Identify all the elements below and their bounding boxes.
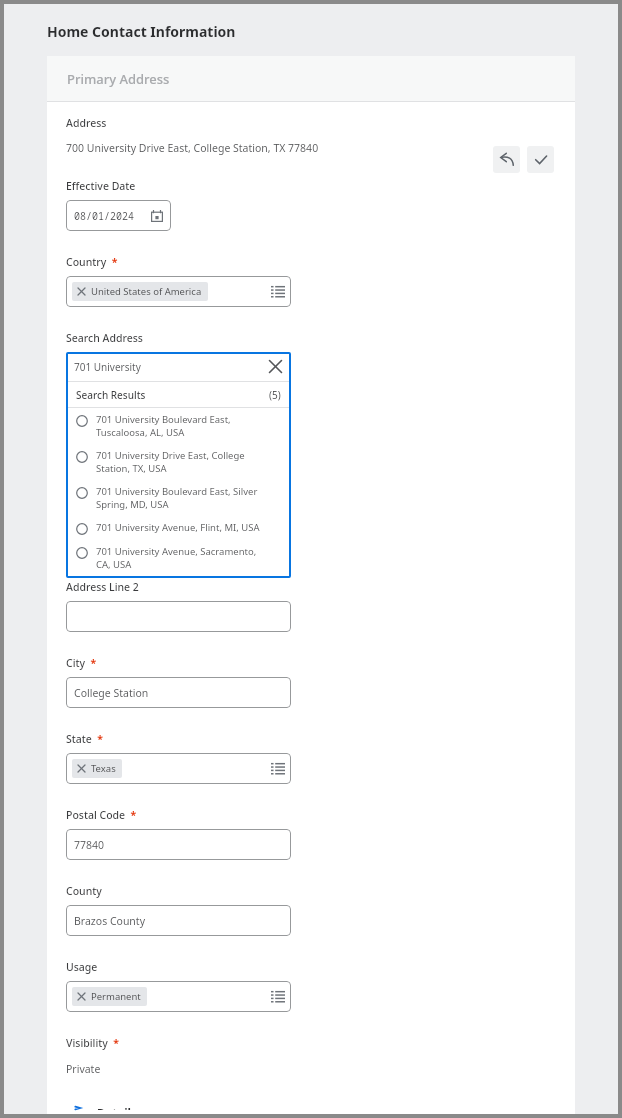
staticText: (5) <box>269 388 281 402</box>
staticText: Permanent <box>91 990 141 1003</box>
button[interactable] <box>66 601 291 632</box>
other: Calendar <box>151 210 163 222</box>
staticText: Address Line 2 <box>66 580 139 594</box>
staticText: 08/01/2024 <box>74 209 134 223</box>
button[interactable]: College Station <box>66 677 291 708</box>
staticText: College Station <box>74 686 149 700</box>
button[interactable]: Brazos County <box>66 905 291 936</box>
staticText: Effective Date <box>66 179 136 193</box>
staticText: 701 University <box>74 360 141 374</box>
button[interactable]: 701 University Drive East, College <box>66 444 291 480</box>
button[interactable]: 77840 <box>66 829 291 860</box>
staticText: Address <box>66 116 107 130</box>
button[interactable]: Confirm <box>527 146 554 173</box>
button[interactable]: 701 University Avenue, Sacramento, <box>66 540 291 576</box>
staticText: CA, USA <box>96 558 132 571</box>
staticText: 701 University Boulevard East, <box>96 413 231 426</box>
staticText: 701 University Boulevard East, Silver <box>96 485 258 498</box>
button[interactable]: Details <box>47 1106 575 1114</box>
staticText: Details <box>97 1106 137 1110</box>
staticText: 701 University Drive East, College <box>96 449 245 462</box>
staticText: City * <box>66 656 97 670</box>
button[interactable]: 701 University Boulevard East, <box>66 408 291 444</box>
staticText: 701 University Avenue, Flint, MI, USA <box>96 521 260 534</box>
button[interactable]: 701 University Avenue, Flint, MI, USA <box>66 516 291 540</box>
staticText: Station, TX, USA <box>96 462 167 475</box>
button[interactable]: Permanent <box>66 981 291 1012</box>
staticText: Tuscaloosa, AL, USA <box>96 426 185 439</box>
staticText: Country * <box>66 255 118 269</box>
button[interactable]: United States of America <box>66 276 291 307</box>
staticText: Private <box>66 1062 101 1076</box>
staticText: Primary Address <box>67 70 170 88</box>
button[interactable]: 08/01/2024 <box>66 200 171 231</box>
staticText: Search Results <box>76 388 146 402</box>
staticText: Visibility * <box>66 1036 119 1050</box>
staticText: Usage <box>66 960 98 974</box>
staticText: 700 University Drive East, College Stati… <box>66 141 319 155</box>
staticText: Search Address <box>66 331 143 345</box>
staticText: State * <box>66 732 104 746</box>
staticText: United States of America <box>91 285 202 298</box>
button[interactable]: Undo <box>493 146 520 173</box>
staticText: Home Contact Information <box>47 22 236 41</box>
staticText: Brazos County <box>74 914 146 928</box>
button[interactable]: 701 University <box>66 352 291 381</box>
button[interactable]: Texas <box>66 753 291 784</box>
staticText: 701 University Avenue, Sacramento, <box>96 545 257 558</box>
staticText: Postal Code * <box>66 808 137 822</box>
button[interactable]: 701 University Boulevard East, Silver <box>66 480 291 516</box>
staticText: County <box>66 884 102 898</box>
staticText: Texas <box>91 762 116 775</box>
staticText: Spring, MD, USA <box>96 498 169 511</box>
staticText: 77840 <box>74 838 105 852</box>
other: Clear <box>268 359 283 374</box>
